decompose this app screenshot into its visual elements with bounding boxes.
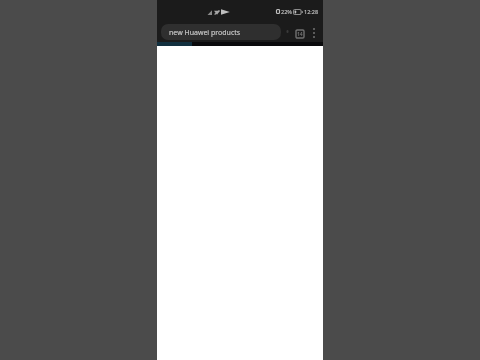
staticText: 22%	[281, 8, 292, 15]
staticText: 12:28	[304, 8, 319, 15]
button[interactable]: Switch tabs	[293, 27, 307, 41]
button[interactable]: Voice search	[281, 26, 293, 38]
button[interactable]: More options	[307, 26, 321, 40]
button[interactable]: new Huawei products	[161, 24, 281, 40]
staticText: new Huawei products	[169, 28, 241, 38]
staticText: 14	[297, 31, 303, 38]
